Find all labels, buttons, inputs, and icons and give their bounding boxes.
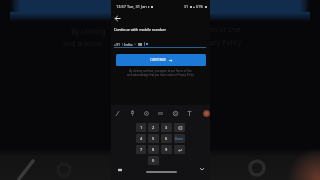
button[interactable]: Back (113, 14, 122, 23)
staticText: rms of Use (205, 25, 241, 35)
staticText: Continue with mobile number (114, 27, 166, 32)
button[interactable]: 2 (148, 123, 159, 132)
staticText: 1 (140, 125, 143, 130)
button[interactable]: 0 (148, 156, 159, 165)
staticText: 4 (140, 136, 143, 141)
staticText: 13:57 (116, 4, 126, 9)
staticText: 9 (165, 147, 168, 152)
staticText: 98 (138, 42, 143, 47)
staticText: 0 (152, 158, 155, 163)
staticText: vacy Policy (206, 38, 242, 48)
staticText: 5 (152, 136, 155, 141)
staticText: and acknow (63, 39, 103, 49)
staticText: India (124, 42, 133, 47)
button[interactable]: GIF (156, 109, 165, 118)
button[interactable]: 4 (136, 134, 146, 143)
staticText: 3 (165, 125, 168, 130)
button[interactable]: ret (174, 145, 185, 154)
button[interactable]: 5 (148, 134, 159, 143)
staticText: 61% (196, 4, 204, 9)
button[interactable]: Switch keyboard (116, 166, 123, 173)
staticText: Tue, 31 Jan (127, 4, 147, 9)
staticText: 31 (184, 4, 189, 9)
staticText: By clicking (71, 27, 106, 37)
button[interactable]: 9 (161, 145, 172, 154)
button[interactable]: 1 (136, 123, 146, 132)
button[interactable]: Clipboard (113, 109, 122, 118)
button[interactable]: Settings (171, 109, 180, 118)
button[interactable]: Hide keyboard (198, 165, 205, 172)
staticText: +91 (114, 42, 121, 47)
button[interactable]: del (174, 123, 185, 132)
button[interactable]: Text format (185, 109, 194, 118)
staticText: 8 (152, 147, 155, 152)
staticText: 6 (165, 136, 168, 141)
button[interactable]: Voice input (128, 109, 137, 118)
button[interactable]: CONTINUE (116, 54, 206, 66)
button[interactable]: Done (174, 134, 185, 143)
staticText: 2 (152, 125, 155, 130)
button[interactable]: 8 (148, 145, 159, 154)
button[interactable]: Sticker (142, 109, 151, 118)
staticText: 7 (140, 147, 143, 152)
staticText: By clicking continue, you agree to our T… (113, 69, 208, 77)
button[interactable]: 6 (161, 134, 172, 143)
staticText: Done (175, 137, 184, 141)
button[interactable]: 7 (136, 145, 146, 154)
staticText: CONTINUE (150, 58, 167, 62)
button[interactable]: 3 (161, 123, 172, 132)
